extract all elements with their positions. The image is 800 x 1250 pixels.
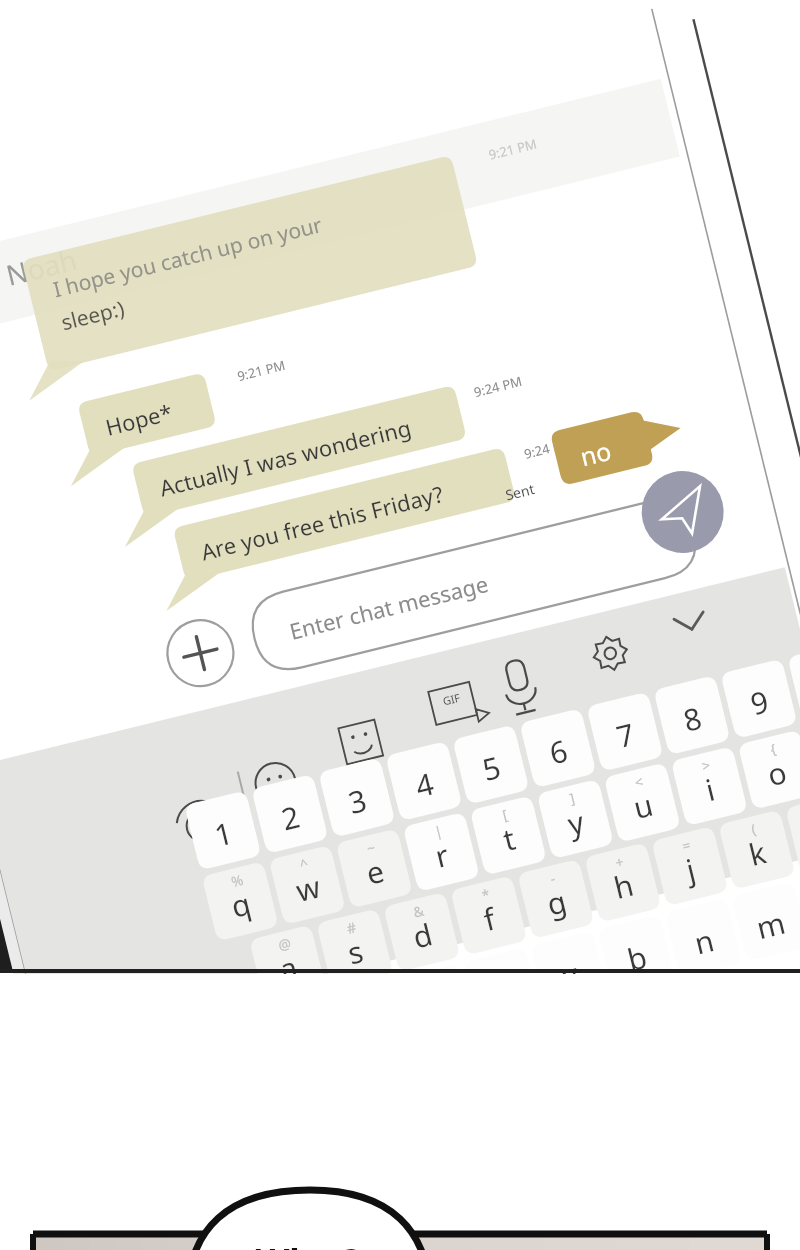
button[interactable]: Comic panel: tilted phone showing chat w… xyxy=(0,0,800,1250)
